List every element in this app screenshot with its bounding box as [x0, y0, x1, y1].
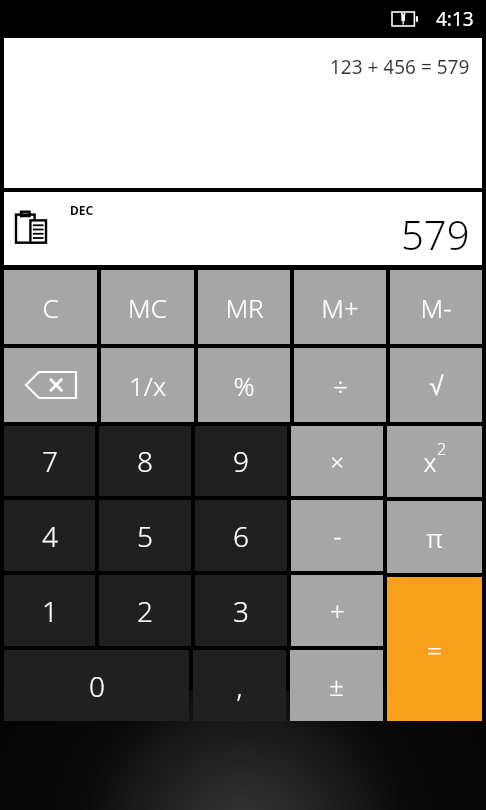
staticText: 4:13	[436, 6, 474, 32]
staticText: 0	[89, 667, 105, 705]
button[interactable]: ,	[193, 650, 286, 721]
button[interactable]: 2	[99, 575, 191, 646]
staticText: 6	[233, 517, 249, 555]
button[interactable]: π	[387, 501, 482, 573]
other: Paste from clipboard	[16, 211, 46, 247]
button[interactable]: C	[4, 270, 97, 344]
button[interactable]: 5	[99, 500, 191, 571]
button[interactable]: MC	[101, 270, 194, 344]
staticText: M+	[321, 290, 359, 325]
staticText: π	[426, 520, 443, 555]
button[interactable]: 123 + 456 = 579	[4, 38, 482, 188]
button[interactable]: 8	[99, 426, 191, 496]
staticText: MR	[225, 290, 264, 325]
button[interactable]: 0	[4, 650, 189, 721]
button[interactable]: √	[390, 348, 482, 422]
staticText: 9	[233, 442, 249, 480]
staticText: %	[233, 368, 255, 403]
staticText: 579	[401, 207, 470, 261]
button[interactable]: x	[387, 426, 482, 497]
staticText: 7	[42, 442, 58, 480]
staticText: -	[333, 518, 342, 553]
staticText: 2	[437, 438, 447, 460]
button[interactable]: M+	[294, 270, 386, 344]
button[interactable]: 6	[195, 500, 287, 571]
staticText: C	[42, 290, 59, 325]
staticText: √	[429, 371, 444, 400]
button[interactable]: 3	[195, 575, 287, 646]
staticText: ÷	[333, 368, 348, 403]
button[interactable]: -	[291, 500, 383, 571]
button[interactable]: ÷	[294, 348, 386, 422]
button[interactable]: =	[387, 577, 482, 721]
button[interactable]: 7	[4, 426, 95, 496]
staticText: 123 + 456 = 579	[330, 54, 470, 80]
staticText: 3	[233, 592, 249, 630]
button[interactable]: MR	[198, 270, 290, 344]
button[interactable]: 9	[195, 426, 287, 496]
staticText: ±	[329, 668, 344, 703]
staticText: ×	[330, 445, 344, 478]
staticText: 5	[137, 517, 153, 555]
staticText: 2	[137, 592, 153, 630]
staticText: DEC	[70, 202, 94, 218]
button[interactable]: Paste from clipboard	[4, 192, 482, 265]
button[interactable]: %	[198, 348, 290, 422]
staticText: ,	[236, 667, 243, 705]
staticText: +	[330, 593, 345, 628]
staticText: 8	[137, 442, 153, 480]
staticText: M-	[420, 290, 452, 325]
button[interactable]: 1/x	[101, 348, 194, 422]
staticText: MC	[128, 290, 167, 325]
button[interactable]: M-	[390, 270, 482, 344]
staticText: =	[427, 632, 442, 667]
button[interactable]: 1	[4, 575, 95, 646]
staticText: 1	[42, 592, 58, 630]
button[interactable]: Backspace	[4, 348, 97, 422]
button[interactable]: +	[291, 575, 383, 646]
button[interactable]: ±	[290, 650, 383, 721]
staticText: 4	[42, 517, 58, 555]
staticText: x	[423, 444, 437, 479]
button[interactable]: 4	[4, 500, 95, 571]
button[interactable]: ×	[291, 426, 383, 496]
staticText: 1/x	[129, 368, 166, 403]
